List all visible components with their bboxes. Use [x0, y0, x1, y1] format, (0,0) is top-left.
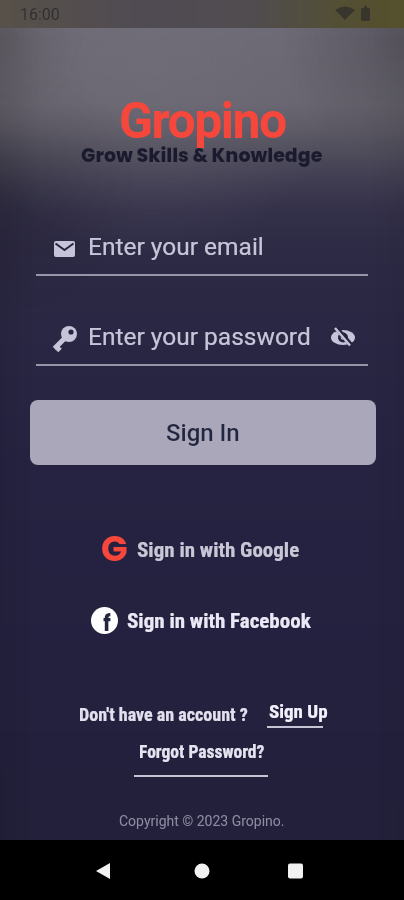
button[interactable]: [274, 850, 318, 890]
button[interactable]: Enter your email: [36, 228, 368, 278]
button[interactable]: Sign Up: [262, 694, 330, 734]
staticText: Sign In: [166, 419, 240, 447]
staticText: G: [101, 524, 128, 570]
staticText: Grow Skills & Knowledge: [81, 142, 323, 169]
staticText: Sign in with Facebook: [127, 609, 311, 634]
button[interactable]: Forgot Password?: [134, 738, 270, 780]
staticText: Enter your password: [88, 322, 311, 351]
button[interactable]: Enter your password: [36, 318, 368, 368]
button[interactable]: f: [91, 600, 313, 640]
staticText: 16:00: [20, 5, 60, 24]
staticText: Sign Up: [269, 700, 328, 722]
staticText: Forgot Password?: [139, 742, 265, 763]
button[interactable]: [80, 850, 124, 890]
staticText: Sign in with Google: [137, 538, 300, 563]
button[interactable]: Sign In: [30, 400, 376, 465]
button[interactable]: [180, 850, 224, 890]
staticText: Copyright © 2023 Gropino.: [119, 813, 285, 829]
staticText: Enter your email: [88, 232, 264, 261]
button[interactable]: G: [96, 524, 308, 570]
staticText: Gropino: [119, 92, 286, 151]
staticText: Don't have an account ?: [79, 704, 248, 725]
staticText: f: [103, 608, 111, 634]
